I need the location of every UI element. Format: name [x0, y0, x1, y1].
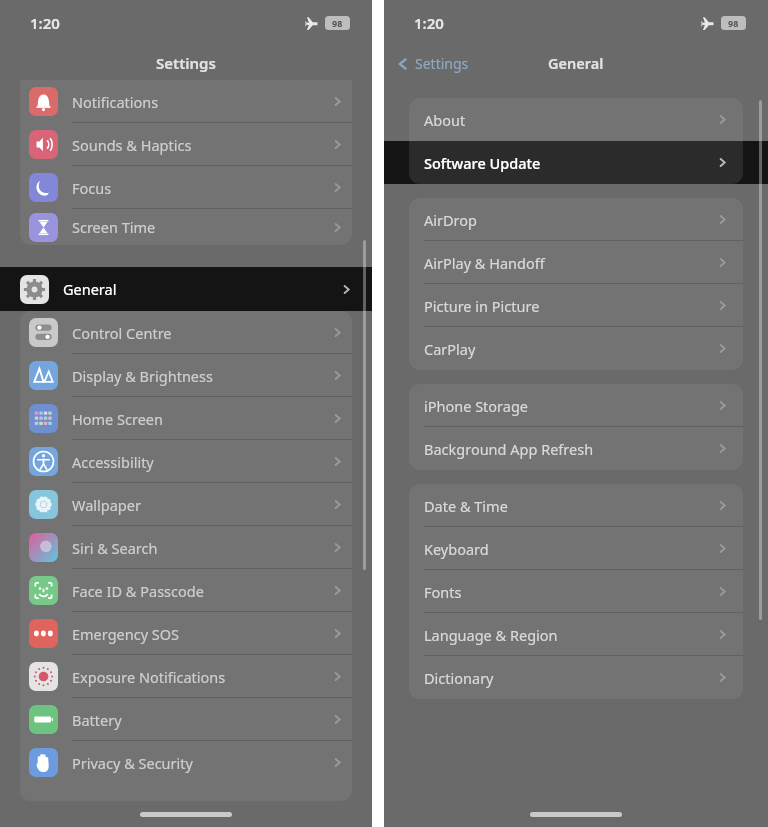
staticText: 98 [332, 17, 343, 29]
staticText: Battery [72, 710, 122, 730]
button[interactable]: Software Update [409, 141, 743, 184]
button[interactable]: CarPlay [409, 327, 743, 370]
staticText: Screen Time [72, 217, 156, 237]
staticText: Siri & Search [72, 538, 158, 558]
button[interactable]: Privacy & Security [20, 741, 352, 784]
staticText: Control Centre [72, 323, 172, 343]
staticText: Emergency SOS [72, 624, 180, 644]
staticText: Software Update [424, 153, 541, 173]
button[interactable]: Screen Time [20, 209, 352, 245]
button[interactable]: Keyboard [409, 527, 743, 570]
button[interactable]: Display & Brightness [20, 354, 352, 397]
staticText: Keyboard [424, 539, 489, 559]
staticText: Display & Brightness [72, 366, 213, 386]
button[interactable]: Dictionary [409, 656, 743, 699]
button[interactable]: AirDrop [409, 198, 743, 241]
button[interactable]: Emergency SOS [20, 612, 352, 655]
staticText: 1:20 [414, 13, 444, 33]
staticText: 98 [728, 17, 739, 29]
button[interactable]: AirPlay & Handoff [409, 241, 743, 284]
staticText: Accessibility [72, 452, 154, 472]
staticText: AirPlay & Handoff [424, 253, 545, 273]
button[interactable]: Accessibility [20, 440, 352, 483]
staticText: Background App Refresh [424, 439, 594, 459]
staticText: iPhone Storage [424, 396, 529, 416]
staticText: CarPlay [424, 339, 476, 359]
button[interactable]: Sounds & Haptics [20, 123, 352, 166]
button[interactable]: iPhone Storage [409, 384, 743, 427]
staticText: Settings [415, 54, 469, 73]
button[interactable]: Face ID & Passcode [20, 569, 352, 612]
staticText: Privacy & Security [72, 753, 193, 773]
staticText: Focus [72, 178, 112, 198]
button[interactable]: Exposure Notifications [20, 655, 352, 698]
button[interactable]: Language & Region [409, 613, 743, 656]
button[interactable]: Control Centre [20, 311, 352, 354]
staticText: General [63, 279, 117, 299]
button[interactable]: General [0, 267, 372, 311]
staticText: Fonts [424, 582, 462, 602]
staticText: Picture in Picture [424, 296, 540, 316]
button[interactable]: Siri & Search [20, 526, 352, 569]
button[interactable]: Focus [20, 166, 352, 209]
button[interactable]: Notifications [20, 80, 352, 123]
staticText: Sounds & Haptics [72, 135, 192, 155]
staticText: AirDrop [424, 210, 477, 230]
button[interactable]: Wallpaper [20, 483, 352, 526]
staticText: About [424, 110, 466, 130]
staticText: Home Screen [72, 409, 163, 429]
button[interactable]: Home Screen [20, 397, 352, 440]
button[interactable]: Settings [396, 54, 469, 73]
staticText: Wallpaper [72, 495, 141, 515]
button[interactable]: Fonts [409, 570, 743, 613]
button[interactable]: Battery [20, 698, 352, 741]
staticText: General [548, 53, 604, 73]
staticText: Settings [156, 53, 216, 73]
staticText: Dictionary [424, 668, 494, 688]
button[interactable]: Date & Time [409, 484, 743, 527]
staticText: Date & Time [424, 496, 508, 516]
staticText: 1:20 [30, 13, 60, 33]
button[interactable]: Background App Refresh [409, 427, 743, 470]
staticText: Language & Region [424, 625, 558, 645]
staticText: Face ID & Passcode [72, 581, 204, 601]
staticText: Exposure Notifications [72, 667, 226, 687]
button[interactable]: Picture in Picture [409, 284, 743, 327]
staticText: Notifications [72, 92, 159, 112]
